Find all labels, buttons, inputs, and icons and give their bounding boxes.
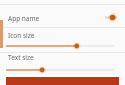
button[interactable]: Icon size xyxy=(0,28,125,52)
button[interactable]: Toggle app name xyxy=(104,12,118,24)
button[interactable]: App name xyxy=(0,5,125,27)
staticText: Text size xyxy=(8,53,34,62)
staticText: App name xyxy=(8,14,40,23)
staticText: Icon size xyxy=(8,31,35,40)
button[interactable]: Text size xyxy=(0,53,125,77)
